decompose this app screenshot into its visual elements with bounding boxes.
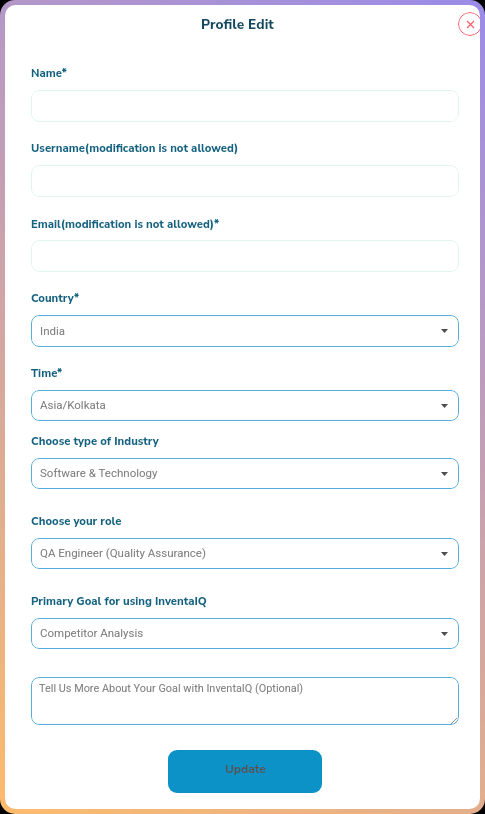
button[interactable]: Asia/Kolkata (31, 390, 459, 421)
staticText: QA Engineer (Quality Assurance) (40, 546, 206, 559)
button[interactable] (31, 240, 459, 272)
staticText: Choose your role (31, 514, 122, 529)
button[interactable]: Software & Technology (31, 458, 459, 489)
staticText: Email(modification is not allowed)* (31, 217, 220, 232)
staticText: Username(modification is not allowed) (31, 141, 239, 156)
staticText: Asia/Kolkata (40, 398, 106, 411)
staticText: Competitor Analysis (40, 626, 144, 639)
staticText: Choose type of Industry (31, 434, 159, 449)
staticText: Time* (31, 366, 63, 381)
staticText: Country* (31, 291, 80, 306)
staticText: India (40, 324, 66, 337)
button[interactable]: Competitor Analysis (31, 618, 459, 649)
staticText: Primary Goal for using InventaIQ (31, 594, 207, 609)
staticText: Software & Technology (40, 466, 158, 479)
button[interactable]: Close (458, 12, 480, 36)
button[interactable]: Tell Us More About Your Goal with Invent… (31, 677, 459, 725)
staticText: Profile Edit (201, 15, 274, 34)
button[interactable] (31, 165, 459, 197)
button[interactable] (31, 90, 459, 122)
button[interactable]: Update (168, 750, 322, 793)
staticText: Update (225, 761, 266, 777)
staticText: Name* (31, 66, 67, 81)
button[interactable]: QA Engineer (Quality Assurance) (31, 538, 459, 569)
staticText: Tell Us More About Your Goal with Invent… (39, 682, 304, 695)
button[interactable]: India (31, 315, 459, 347)
